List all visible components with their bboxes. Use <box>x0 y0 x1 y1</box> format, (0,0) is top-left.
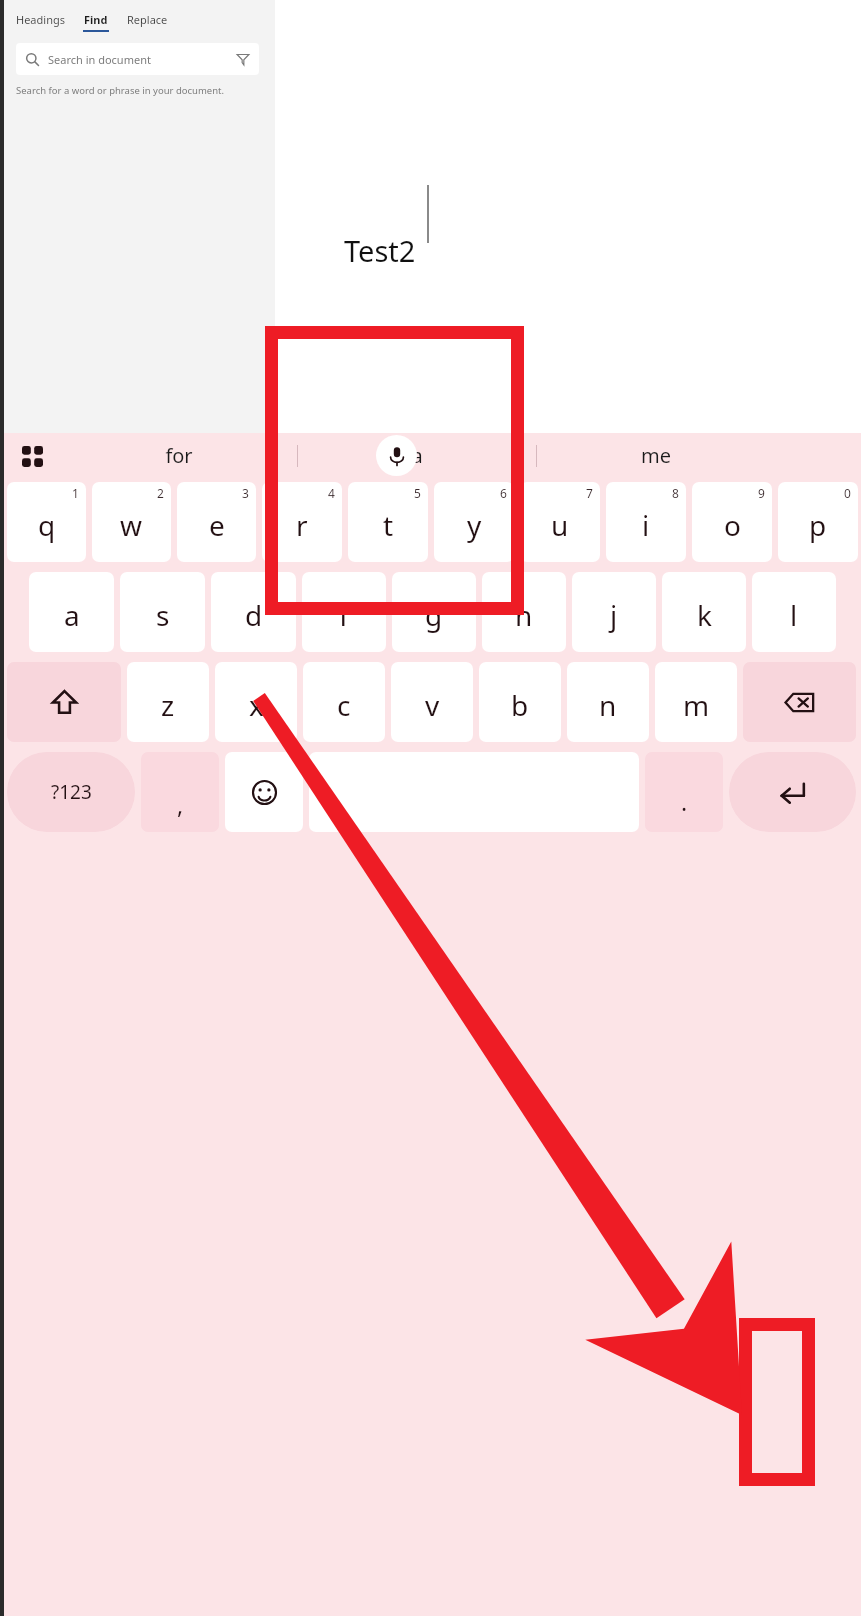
button[interactable]: d <box>211 572 296 652</box>
button[interactable]: p <box>778 482 858 562</box>
staticText: b <box>511 686 529 724</box>
button[interactable]: a <box>29 572 114 652</box>
staticText: me <box>641 442 671 469</box>
button[interactable]: Search in document <box>16 43 259 75</box>
button[interactable]: for <box>60 433 297 478</box>
button[interactable]: j <box>572 572 656 652</box>
button[interactable]: t <box>348 482 428 562</box>
staticText: e <box>209 506 225 544</box>
staticText: j <box>610 596 618 634</box>
button[interactable]: Find <box>81 12 111 32</box>
button[interactable]: Enter <box>729 752 856 832</box>
button[interactable]: s <box>120 572 205 652</box>
button[interactable]: w <box>92 482 171 562</box>
staticText: 8 <box>672 485 679 501</box>
staticText: y <box>467 506 482 544</box>
staticText: t <box>383 506 394 544</box>
button[interactable]: i <box>606 482 686 562</box>
button[interactable]: Shift <box>7 662 121 742</box>
button[interactable]: h <box>482 572 566 652</box>
button[interactable]: , <box>141 752 219 832</box>
staticText: z <box>161 686 175 724</box>
staticText: 2 <box>157 485 164 501</box>
staticText: ?123 <box>51 779 92 805</box>
staticText: , <box>177 789 184 820</box>
button[interactable]: c <box>303 662 385 742</box>
button[interactable]: y <box>434 482 514 562</box>
button[interactable]: v <box>391 662 473 742</box>
staticText: c <box>337 686 351 724</box>
staticText: o <box>724 506 741 544</box>
staticText: s <box>156 596 170 634</box>
staticText: 1 <box>72 485 79 501</box>
staticText: for <box>165 442 193 469</box>
button[interactable]: g <box>392 572 476 652</box>
button[interactable]: . <box>645 752 723 832</box>
staticText: 4 <box>328 485 335 501</box>
staticText: 0 <box>844 485 851 501</box>
button[interactable]: e <box>177 482 256 562</box>
staticText: p <box>809 506 827 544</box>
staticText: n <box>599 686 617 724</box>
staticText: v <box>425 686 440 724</box>
staticText: k <box>697 596 712 634</box>
button[interactable]: me <box>537 433 775 478</box>
staticText: 9 <box>758 485 765 501</box>
button[interactable]: ?123 <box>7 752 135 832</box>
staticText: Search for a word or phrase in your docu… <box>16 84 225 97</box>
button[interactable]: x <box>215 662 297 742</box>
button[interactable]: q <box>7 482 86 562</box>
staticText: a <box>64 596 80 634</box>
button[interactable]: k <box>662 572 746 652</box>
staticText: 5 <box>414 485 421 501</box>
staticText: w <box>120 506 143 544</box>
button[interactable]: Headings <box>14 12 67 32</box>
staticText: h <box>515 596 533 634</box>
button[interactable]: Space <box>309 752 639 832</box>
button[interactable]: Emoji <box>225 752 303 832</box>
button[interactable]: r <box>262 482 342 562</box>
staticText: . <box>681 786 688 817</box>
button[interactable]: u <box>520 482 600 562</box>
button[interactable]: a <box>298 433 536 478</box>
button[interactable]: Replace <box>125 12 170 32</box>
button[interactable]: f <box>302 572 386 652</box>
staticText: Find <box>84 12 108 27</box>
button[interactable]: b <box>479 662 561 742</box>
staticText: u <box>551 506 569 544</box>
button[interactable]: Keyboard modes <box>14 438 50 474</box>
button[interactable]: n <box>567 662 649 742</box>
staticText: Replace <box>127 12 168 27</box>
staticText: 3 <box>242 485 249 501</box>
staticText: 7 <box>586 485 593 501</box>
staticText: m <box>683 686 710 724</box>
staticText: Search in document <box>48 52 151 67</box>
staticText: d <box>245 596 263 634</box>
staticText: x <box>249 686 264 724</box>
staticText: q <box>38 506 56 544</box>
staticText: r <box>296 506 308 544</box>
staticText: Headings <box>16 12 65 27</box>
staticText: g <box>425 596 443 634</box>
button[interactable]: m <box>655 662 737 742</box>
staticText: l <box>790 596 798 634</box>
button[interactable]: Backspace <box>743 662 856 742</box>
button[interactable]: Voice input <box>376 435 417 476</box>
button[interactable]: z <box>127 662 209 742</box>
staticText: f <box>339 596 349 634</box>
staticText: 6 <box>500 485 507 501</box>
staticText: i <box>642 506 650 544</box>
button[interactable]: o <box>692 482 772 562</box>
button[interactable]: l <box>752 572 836 652</box>
staticText: a <box>411 442 423 469</box>
staticText: Test2 <box>344 231 416 270</box>
